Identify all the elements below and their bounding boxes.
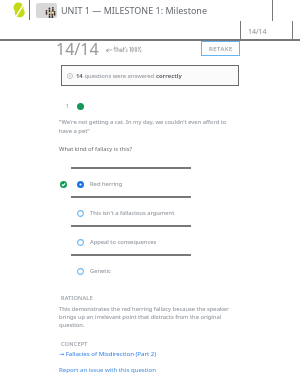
staticText: → Fallacies of Misdirection (Part 2)	[59, 349, 157, 357]
staticText: 14/14	[248, 27, 267, 37]
staticText: Appeal to consequences	[90, 238, 157, 246]
staticText: This isn't a fallacious argument	[90, 209, 175, 217]
staticText: CONCEPT	[61, 340, 88, 348]
button[interactable]: Genetic	[60, 261, 191, 281]
staticText: "We're not getting a cat. In my day, we …	[59, 118, 227, 135]
button[interactable]: Appeal to consequences	[60, 232, 191, 252]
staticText: 14/14	[56, 38, 99, 60]
staticText: questions were answered	[83, 72, 156, 80]
button[interactable]: Red herring	[60, 174, 191, 194]
button[interactable]: Report an issue with this question	[59, 365, 156, 373]
staticText: Report an issue with this question	[59, 365, 156, 373]
staticText: 14	[76, 72, 83, 80]
staticText: correctly	[156, 72, 182, 80]
staticText: RETAKE	[209, 45, 233, 53]
button[interactable]: This isn't a fallacious argument	[60, 203, 191, 223]
button[interactable]: → Fallacies of Misdirection (Part 2)	[59, 349, 157, 357]
staticText: What kind of fallacy is this?	[59, 145, 133, 153]
button[interactable]: RETAKE	[201, 41, 240, 56]
staticText: RATIONALE	[61, 294, 93, 302]
staticText: 1	[66, 102, 70, 110]
staticText: UNIT 1 — MILESTONE 1: Milestone	[61, 4, 207, 16]
staticText: Red herring	[90, 180, 123, 188]
staticText: This demonstrates the red herring fallac…	[59, 305, 229, 329]
staticText: Genetic	[90, 267, 111, 275]
